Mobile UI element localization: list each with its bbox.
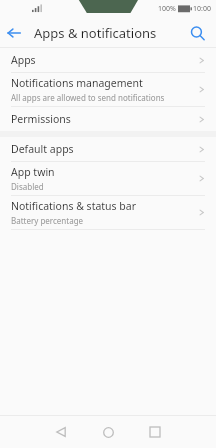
staticText: Notifications management — [11, 76, 143, 90]
staticText: Permissions — [11, 112, 71, 126]
staticText: Apps — [11, 53, 36, 67]
button[interactable]: Search — [183, 19, 211, 47]
button[interactable]: Home — [95, 419, 121, 445]
staticText: Notifications & status bar — [11, 199, 137, 213]
button[interactable]: Permissions — [0, 107, 216, 131]
staticText: Disabled — [11, 181, 44, 192]
staticText: Battery percentage — [11, 215, 84, 226]
staticText: Default apps — [11, 142, 74, 156]
button[interactable]: Apps — [0, 48, 216, 72]
staticText: Apps & notifications — [34, 24, 157, 42]
button[interactable]: Notifications & status bar — [0, 196, 216, 229]
button[interactable]: Notifications management — [0, 73, 216, 106]
button[interactable]: Back — [48, 419, 74, 445]
staticText: 10:00 — [193, 4, 211, 14]
staticText: All apps are allowed to send notificatio… — [11, 92, 165, 103]
button[interactable]: Back — [0, 19, 28, 47]
button[interactable]: Recent apps — [142, 419, 168, 445]
staticText: 100% — [158, 4, 176, 14]
staticText: App twin — [11, 165, 55, 179]
button[interactable]: App twin — [0, 162, 216, 195]
button[interactable]: Default apps — [0, 137, 216, 161]
